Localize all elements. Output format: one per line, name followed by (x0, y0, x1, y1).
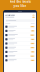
button[interactable]: Profile (32, 14, 35, 18)
button[interactable]: Brand listing (3, 33, 36, 37)
button[interactable]: Brand listing (3, 37, 36, 41)
staticText: you like (13, 4, 26, 8)
button[interactable]: Brand listing (3, 25, 36, 29)
button[interactable]: Brand listing (3, 41, 36, 45)
button[interactable]: Brand listing (3, 29, 36, 33)
staticText: Local Brands (5, 14, 15, 16)
button[interactable]: Brand listing (3, 50, 36, 54)
button[interactable] (5, 19, 35, 22)
staticText: Find the treats (9, 0, 30, 4)
button[interactable]: Brand listing (3, 46, 36, 50)
button[interactable]: Brand listing (3, 54, 36, 58)
button[interactable]: Brand listing (3, 58, 36, 62)
